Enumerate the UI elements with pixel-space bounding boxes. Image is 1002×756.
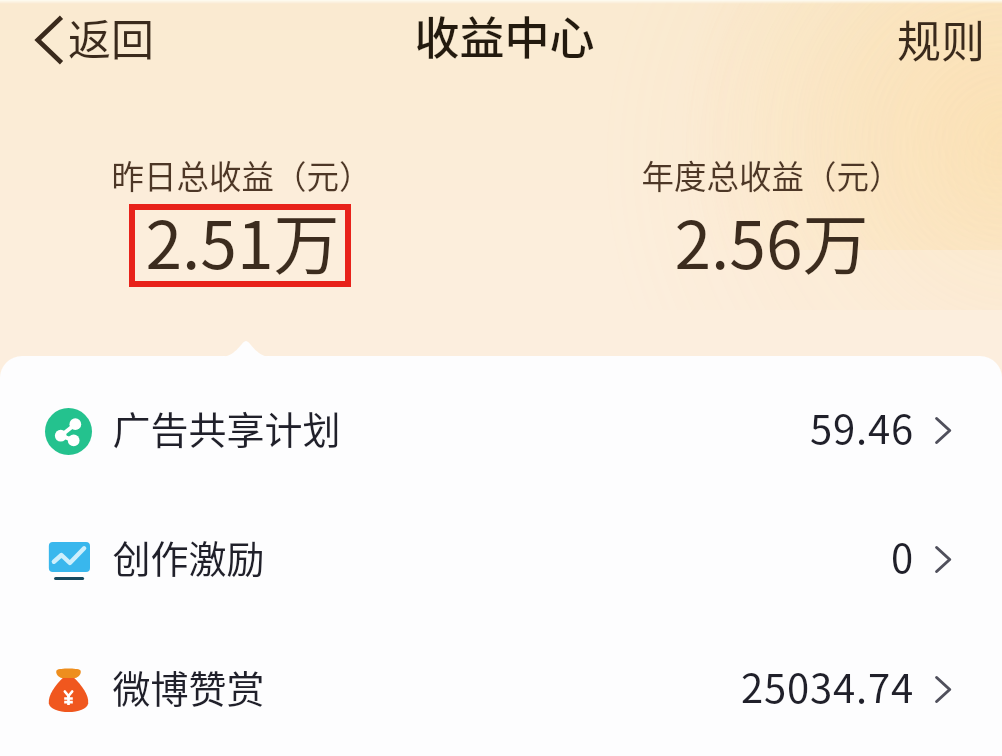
button[interactable]: 规则 [875, 0, 1002, 83]
button[interactable]: Weibo reward [0, 620, 1002, 752]
staticText: 年度总收益（元） [641, 151, 902, 198]
other: Creation incentive [48, 542, 90, 584]
staticText: 2.56万 [674, 192, 869, 282]
staticText: 59.46 [810, 398, 914, 456]
other: Ad share plan [45, 408, 92, 455]
button[interactable]: 返回 [27, 0, 168, 76]
staticText: 25034.74 [741, 657, 914, 715]
staticText: 广告共享计划 [112, 400, 341, 455]
other: Weibo reward [48, 669, 89, 714]
staticText: 规则 [897, 7, 985, 71]
staticText: 0 [891, 527, 914, 585]
button[interactable]: Ad share plan [0, 361, 1002, 493]
button[interactable]: Creation incentive [0, 490, 1002, 622]
staticText: 微博赞赏 [112, 659, 265, 714]
staticText: 收益中心 [414, 3, 595, 68]
staticText: 昨日总收益（元） [111, 151, 372, 198]
staticText: 返回 [68, 6, 154, 68]
staticText: 创作激励 [112, 529, 265, 584]
staticText: 2.51万 [145, 192, 340, 282]
